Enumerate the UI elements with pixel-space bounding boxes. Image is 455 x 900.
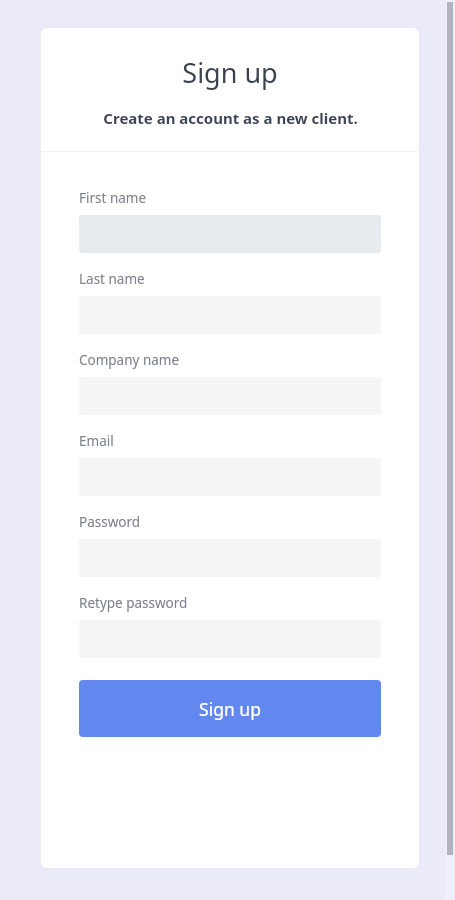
staticText: Create an account as a new client.	[103, 108, 358, 128]
button[interactable]: Sign up	[79, 680, 381, 737]
staticText: Password	[79, 513, 141, 531]
staticText: Retype password	[79, 594, 188, 612]
staticText: First name	[79, 189, 147, 207]
staticText: Sign up	[182, 54, 278, 91]
staticText: Last name	[79, 270, 145, 288]
staticText: Company name	[79, 351, 180, 369]
staticText: Email	[79, 432, 114, 450]
staticText: Sign up	[199, 697, 261, 721]
